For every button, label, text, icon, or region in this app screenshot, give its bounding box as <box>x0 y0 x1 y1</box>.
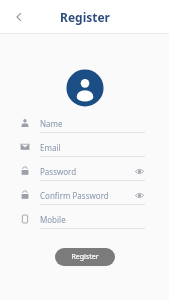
button[interactable]: Password <box>20 162 145 186</box>
staticText: Register <box>60 9 110 25</box>
button[interactable]: Mobile <box>20 210 145 234</box>
staticText: Email <box>40 142 61 153</box>
staticText: Mobile <box>40 214 66 225</box>
button[interactable]: Show password <box>133 189 145 201</box>
button[interactable]: Show password <box>133 165 145 177</box>
button[interactable]: Confirm Password <box>20 186 145 210</box>
staticText: Name <box>40 118 63 129</box>
staticText: Register <box>71 252 99 262</box>
button[interactable]: Back <box>6 4 32 30</box>
staticText: Confirm Password <box>40 190 109 201</box>
staticText: Password <box>40 166 77 177</box>
button[interactable]: Register <box>55 248 115 266</box>
button[interactable]: Name <box>20 114 145 138</box>
button[interactable]: Email <box>20 138 145 162</box>
